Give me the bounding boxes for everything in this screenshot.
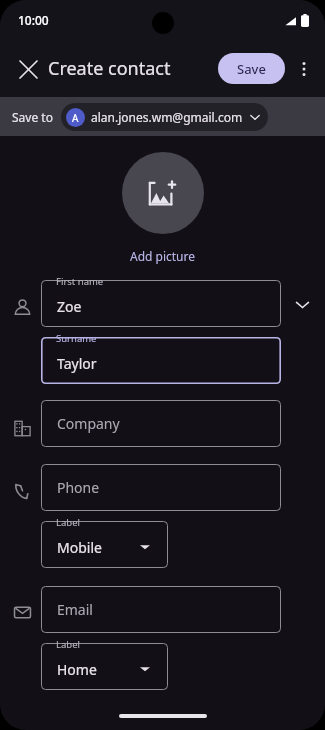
staticText: Save bbox=[237, 60, 266, 78]
staticText: Create contact bbox=[48, 56, 171, 81]
staticText: Label bbox=[56, 638, 80, 651]
staticText: Email bbox=[57, 600, 93, 619]
staticText: A bbox=[72, 111, 79, 125]
staticText: Add picture bbox=[130, 248, 196, 264]
button[interactable]: Label bbox=[41, 643, 168, 690]
button[interactable]: First name bbox=[41, 280, 281, 327]
button[interactable]: More options bbox=[285, 50, 323, 88]
staticText: Zoe bbox=[57, 297, 82, 316]
button[interactable]: Company bbox=[41, 400, 281, 447]
button[interactable]: Expand name fields bbox=[286, 288, 318, 320]
staticText: Save to bbox=[12, 109, 53, 125]
staticText: First name bbox=[56, 275, 104, 288]
button[interactable]: Add picture bbox=[122, 152, 204, 234]
staticText: alan.jones.wm@gmail.com bbox=[91, 109, 243, 125]
staticText: Mobile bbox=[57, 538, 102, 557]
staticText: 10:00 bbox=[18, 12, 49, 28]
staticText: Label bbox=[56, 516, 80, 529]
staticText: Surname bbox=[56, 332, 97, 345]
button[interactable]: A bbox=[61, 103, 268, 131]
button[interactable]: Save bbox=[218, 53, 285, 84]
staticText: Home bbox=[57, 660, 97, 679]
staticText: Phone bbox=[57, 478, 100, 497]
button[interactable]: Phone bbox=[41, 464, 281, 511]
staticText: Company bbox=[57, 414, 120, 433]
button[interactable]: Add picture bbox=[124, 246, 202, 266]
button[interactable]: Close bbox=[8, 49, 48, 89]
button[interactable]: Email bbox=[41, 586, 281, 633]
button[interactable]: Label bbox=[41, 521, 168, 568]
staticText: Taylor bbox=[57, 354, 97, 373]
button[interactable]: Surname bbox=[41, 337, 281, 384]
